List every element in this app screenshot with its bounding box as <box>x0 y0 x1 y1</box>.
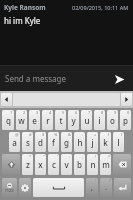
staticText: p <box>123 115 128 126</box>
button[interactable]: g <box>61 132 72 152</box>
staticText: 3 <box>36 110 39 115</box>
button[interactable]: w <box>16 110 27 130</box>
staticText: y <box>71 115 76 126</box>
button[interactable]: n <box>87 154 98 175</box>
button[interactable]: Backspace <box>113 154 131 175</box>
button[interactable]: Enter <box>114 178 131 197</box>
staticText: # <box>29 132 32 137</box>
button[interactable]: Symbols <box>2 178 17 197</box>
button[interactable]: c <box>48 154 59 175</box>
button[interactable]: Settings <box>19 178 31 197</box>
staticText: h <box>77 137 83 148</box>
button[interactable]: Send a message <box>0 66 133 91</box>
button[interactable]: o <box>107 110 118 130</box>
staticText: ?123 <box>5 188 14 193</box>
staticText: , <box>91 183 93 193</box>
button[interactable]: a <box>9 132 20 152</box>
staticText: r <box>46 115 50 126</box>
staticText: 4 <box>49 110 52 115</box>
staticText: - <box>82 132 84 137</box>
staticText: 02/09/2015, 10:11 AM <box>72 4 129 11</box>
staticText: . <box>105 183 107 193</box>
staticText: ? <box>109 178 111 183</box>
staticText: b <box>77 159 82 170</box>
button[interactable]: h <box>74 132 85 152</box>
staticText: e <box>32 115 37 126</box>
staticText: l <box>117 137 120 148</box>
staticText: " <box>43 154 45 159</box>
button[interactable]: Shift <box>2 154 20 175</box>
staticText: f <box>52 137 55 148</box>
staticText: 5 <box>62 110 65 115</box>
staticText: j <box>91 137 94 148</box>
staticText: 9 <box>114 110 117 115</box>
staticText: ? <box>108 154 110 159</box>
staticText: m <box>102 159 110 170</box>
staticText: ( <box>108 132 110 137</box>
button[interactable]: Previous suggestions <box>1 93 12 106</box>
button[interactable]: x <box>35 154 46 175</box>
staticText: g <box>64 137 69 148</box>
button[interactable]: i <box>94 110 105 130</box>
button[interactable]: r <box>42 110 53 130</box>
button[interactable]: More suggestions <box>121 93 132 106</box>
staticText: i <box>98 115 101 126</box>
staticText: 0 <box>127 110 130 115</box>
staticText: % <box>54 132 58 137</box>
staticText: & <box>68 132 71 137</box>
staticText: ) <box>121 132 123 137</box>
staticText: @ <box>15 132 19 137</box>
button[interactable]: e <box>29 110 40 130</box>
button[interactable]: . <box>100 178 112 197</box>
button[interactable]: k <box>100 132 111 152</box>
staticText: Send a message <box>5 73 108 84</box>
staticText: k <box>103 137 108 148</box>
button[interactable]: , <box>86 178 98 197</box>
staticText: ! <box>95 154 97 159</box>
staticText: c <box>52 159 56 170</box>
staticText: t <box>59 115 63 126</box>
staticText: o <box>110 115 115 126</box>
staticText: hi im Kyle <box>4 15 41 26</box>
button[interactable]: f <box>48 132 59 152</box>
button[interactable]: Send <box>108 68 130 90</box>
staticText: $ <box>42 132 45 137</box>
staticText: Kyle Ransom <box>4 3 46 12</box>
staticText: v <box>64 159 69 170</box>
button[interactable]: Space <box>33 178 84 197</box>
button[interactable]: t <box>55 110 66 130</box>
button[interactable]: v <box>61 154 72 175</box>
staticText: 7 <box>88 110 91 115</box>
staticText: + <box>94 132 97 137</box>
staticText: 8 <box>101 110 104 115</box>
staticText: n <box>90 159 96 170</box>
staticText: : <box>69 154 71 159</box>
staticText: x <box>38 159 43 170</box>
button[interactable]: z <box>22 154 33 175</box>
staticText: w <box>18 115 25 126</box>
staticText: * <box>29 154 32 159</box>
staticText: q <box>6 115 11 126</box>
staticText: u <box>84 115 90 126</box>
button[interactable]: b <box>74 154 85 175</box>
staticText: ; <box>82 154 84 159</box>
staticText: z <box>26 159 30 170</box>
staticText: 6 <box>75 110 78 115</box>
staticText: 1 <box>10 110 13 115</box>
button[interactable]: m <box>100 154 111 175</box>
button[interactable]: q <box>2 110 14 130</box>
button[interactable]: d <box>35 132 46 152</box>
button[interactable]: y <box>68 110 79 130</box>
button[interactable]: j <box>87 132 98 152</box>
staticText: ' <box>57 154 58 159</box>
button[interactable]: s <box>22 132 33 152</box>
staticText: d <box>38 137 43 148</box>
staticText: a <box>12 137 17 148</box>
button[interactable]: l <box>113 132 124 152</box>
staticText: s <box>26 137 30 148</box>
staticText: 2 <box>23 110 26 115</box>
button[interactable]: p <box>120 110 131 130</box>
button[interactable]: u <box>81 110 92 130</box>
staticText: ! <box>95 178 97 183</box>
